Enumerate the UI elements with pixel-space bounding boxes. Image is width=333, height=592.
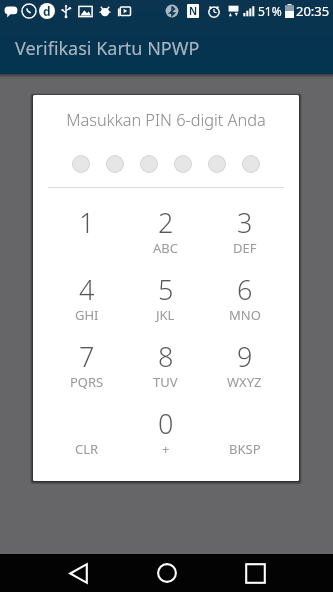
staticText: TUV: [153, 373, 178, 391]
button[interactable]: 8: [126, 336, 205, 403]
staticText: Masukkan PIN 6-digit Anda: [33, 109, 299, 131]
button[interactable]: 9: [205, 336, 284, 403]
button[interactable]: 3: [205, 202, 284, 269]
staticText: N: [189, 4, 198, 18]
button[interactable]: 5: [126, 269, 205, 336]
staticText: JKL: [156, 306, 175, 324]
staticText: 1: [79, 204, 95, 241]
staticText: BKSP: [229, 440, 261, 458]
button[interactable]: CLR: [48, 403, 126, 470]
staticText: PQRS: [70, 373, 104, 391]
staticText: CLR: [75, 440, 99, 458]
button[interactable]: Recents: [211, 554, 299, 592]
button[interactable]: 2: [126, 202, 205, 269]
staticText: 2: [158, 204, 174, 241]
staticText: Verifikasi Kartu NPWP: [15, 36, 200, 61]
staticText: ABC: [153, 239, 178, 257]
staticText: 3: [237, 204, 253, 241]
button[interactable]: BKSP: [205, 403, 284, 470]
staticText: d: [43, 3, 51, 19]
button[interactable]: 7: [48, 336, 126, 403]
staticText: DEF: [233, 239, 257, 257]
staticText: WXYZ: [227, 373, 262, 391]
staticText: 4: [79, 271, 95, 308]
button[interactable]: 1: [48, 202, 126, 269]
staticText: +: [162, 440, 170, 458]
staticText: 6: [237, 271, 253, 308]
button[interactable]: 6: [205, 269, 284, 336]
staticText: 7: [79, 338, 95, 375]
staticText: 20:35: [296, 2, 330, 20]
button[interactable]: Home: [123, 554, 211, 592]
staticText: 9: [237, 338, 253, 375]
button[interactable]: 0: [126, 403, 205, 470]
staticText: GHI: [75, 306, 99, 324]
staticText: MNO: [229, 306, 261, 324]
button[interactable]: 4: [48, 269, 126, 336]
button[interactable]: Back: [34, 554, 123, 592]
staticText: 51%: [258, 3, 282, 19]
staticText: 0: [158, 405, 174, 442]
staticText: 5: [158, 271, 174, 308]
staticText: 8: [158, 338, 174, 375]
